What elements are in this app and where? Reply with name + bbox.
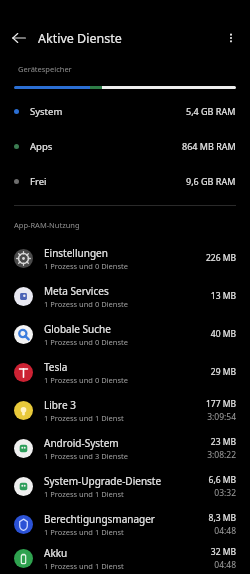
staticText: Berechtigungsmanager	[44, 512, 155, 526]
staticText: 226 MB	[205, 252, 236, 264]
button[interactable]: System	[0, 103, 250, 119]
button[interactable]: Zurück	[6, 25, 32, 51]
staticText: 8,3 MB	[208, 512, 236, 524]
button[interactable]: Apps	[0, 138, 250, 154]
staticText: 3:08:22	[207, 449, 236, 461]
button[interactable]: Akku	[0, 543, 250, 574]
staticText: Android-System	[44, 436, 119, 450]
staticText: System	[30, 105, 63, 118]
button[interactable]: System-Upgrade-Dienste	[0, 467, 250, 505]
staticText: 9,6 GB RAM	[186, 175, 236, 187]
staticText: 29 MB	[210, 366, 236, 378]
staticText: App-RAM-Nutzung	[14, 220, 80, 230]
staticText: Aktive Dienste	[38, 30, 122, 47]
staticText: Apps	[30, 140, 53, 153]
staticText: 864 MB RAM	[182, 140, 236, 152]
button[interactable]: Weitere Optionen	[218, 25, 244, 51]
button[interactable]: Meta Services	[0, 277, 250, 315]
staticText: Tesla	[44, 360, 68, 374]
staticText: Globale Suche	[44, 322, 111, 336]
staticText: Meta Services	[44, 284, 109, 298]
staticText: 1 Prozess und 3 Dienste	[44, 451, 128, 461]
staticText: 32 MB	[210, 546, 236, 558]
button[interactable]: Globale Suche	[0, 315, 250, 353]
button[interactable]: Einstellungen	[0, 239, 250, 277]
button[interactable]: Berechtigungsmanager	[0, 505, 250, 543]
staticText: 177 MB	[205, 398, 236, 410]
staticText: 5,4 GB RAM	[186, 105, 236, 117]
button[interactable]: Tesla	[0, 353, 250, 391]
staticText: 1 Prozess und 0 Dienste	[44, 375, 128, 385]
button[interactable]: Android-System	[0, 429, 250, 467]
staticText: 23 MB	[210, 436, 236, 448]
staticText: Libre 3	[44, 398, 76, 412]
staticText: System-Upgrade-Dienste	[44, 474, 162, 488]
staticText: 03:32	[214, 487, 236, 499]
staticText: 1 Prozess und 1 Dienst	[44, 527, 124, 537]
staticText: Einstellungen	[44, 246, 108, 260]
staticText: 1 Prozess und 1 Dienst	[44, 489, 124, 499]
staticText: Akku	[44, 546, 68, 560]
staticText: 04:48	[214, 525, 236, 537]
staticText: 1 Prozess und 0 Dienste	[44, 261, 128, 271]
staticText: Frei	[30, 175, 47, 188]
staticText: 1 Prozess und 1 Dienst	[44, 413, 124, 423]
staticText: Gerätespeicher	[18, 64, 72, 74]
staticText: 40 MB	[210, 328, 236, 340]
staticText: 04:48	[214, 559, 236, 571]
staticText: 3:09:54	[207, 411, 236, 423]
staticText: 1 Prozess und 0 Dienste	[44, 299, 128, 309]
button[interactable]: Frei	[0, 173, 250, 189]
staticText: 13 MB	[210, 290, 236, 302]
button[interactable]: Libre 3	[0, 391, 250, 429]
staticText: 1 Prozess und 0 Dienste	[44, 337, 128, 347]
staticText: 1 Prozess und 1 Dienst	[44, 561, 124, 571]
staticText: 6,6 MB	[208, 474, 236, 486]
